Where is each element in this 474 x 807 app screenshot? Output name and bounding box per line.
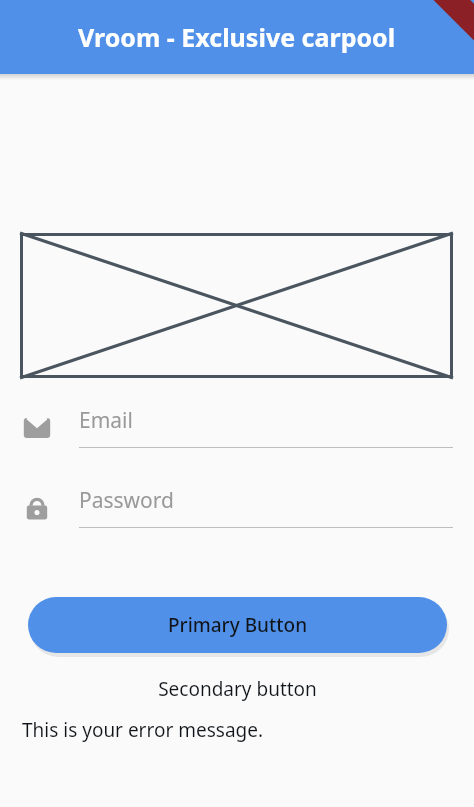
button[interactable]: Secondary button bbox=[0, 667, 474, 711]
staticText: Password bbox=[79, 486, 174, 515]
staticText: This is your error message. bbox=[22, 717, 264, 743]
staticText: Primary Button bbox=[168, 612, 308, 638]
staticText: Email bbox=[79, 406, 133, 435]
button[interactable]: Email bbox=[0, 406, 474, 461]
button[interactable]: Primary Button bbox=[28, 597, 447, 653]
other: Email bbox=[22, 413, 52, 443]
other: Password bbox=[22, 493, 52, 523]
button[interactable]: Password bbox=[0, 486, 474, 541]
staticText: Secondary button bbox=[158, 676, 317, 702]
staticText: Vroom - Exclusive carpool bbox=[78, 20, 396, 54]
